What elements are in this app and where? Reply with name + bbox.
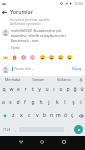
button[interactable]: s xyxy=(7,96,14,109)
staticText: ?123 xyxy=(3,127,11,132)
button[interactable]: b xyxy=(41,109,48,122)
button[interactable]: ö xyxy=(62,109,69,122)
staticText: t xyxy=(32,86,34,93)
staticText: z xyxy=(12,112,15,119)
staticText: v xyxy=(36,112,39,119)
button[interactable]: x xyxy=(17,109,25,122)
button[interactable]: Send xyxy=(71,122,85,136)
staticText: Yorum ekle... xyxy=(14,67,34,71)
staticText: ç xyxy=(71,112,74,119)
staticText: Bu içerikte yorumlar kapalıdır xyxy=(10,18,51,22)
staticText: d xyxy=(16,99,20,106)
staticText: k xyxy=(56,99,59,106)
staticText: Açıklamaları görüntüle xyxy=(10,22,41,26)
button[interactable]: Laughing face xyxy=(39,54,45,60)
staticText: m xyxy=(56,112,61,119)
button[interactable]: Recent apps xyxy=(58,136,70,148)
staticText: Kullanıcı xyxy=(57,77,72,82)
staticText: j xyxy=(48,99,50,106)
staticText: o xyxy=(59,86,63,93)
button[interactable]: , xyxy=(13,122,18,136)
button[interactable]: n xyxy=(48,109,55,122)
button[interactable]: Smiling face xyxy=(66,54,72,60)
staticText: y xyxy=(38,86,41,93)
staticText: Yanıtla xyxy=(11,46,20,50)
button[interactable]: ş xyxy=(69,96,77,109)
button[interactable]: u xyxy=(43,83,50,96)
button[interactable]: z xyxy=(9,109,17,122)
staticText: i xyxy=(80,99,82,106)
staticText: michelle09201 Buradasınd ne çok kazandın… xyxy=(11,29,77,43)
staticText: . xyxy=(67,127,69,132)
button[interactable]: Grinning face xyxy=(48,54,54,60)
button[interactable]: m xyxy=(55,109,62,122)
staticText: ü xyxy=(80,86,84,93)
button[interactable]: h xyxy=(37,96,45,109)
button[interactable]: Blossom xyxy=(20,54,26,60)
staticText: Merhaba xyxy=(5,77,21,82)
staticText: , xyxy=(15,127,17,132)
button[interactable]: Paylaş xyxy=(71,66,83,72)
button[interactable]: Voice input xyxy=(77,76,85,83)
staticText: b xyxy=(43,112,47,119)
button[interactable]: ı xyxy=(50,83,57,96)
staticText: 15:04 xyxy=(74,1,83,6)
staticText: e xyxy=(17,86,20,93)
button[interactable]: w xyxy=(8,83,15,96)
staticText: ş xyxy=(72,99,75,106)
button[interactable]: g xyxy=(29,96,37,109)
staticText: w xyxy=(9,86,14,93)
button[interactable]: q xyxy=(0,83,8,96)
staticText: r xyxy=(24,86,27,93)
button[interactable]: j xyxy=(45,96,53,109)
staticText: u xyxy=(45,86,49,93)
button[interactable]: p xyxy=(64,83,71,96)
staticText: x xyxy=(20,112,23,119)
button[interactable]: i xyxy=(77,96,85,109)
button[interactable]: r xyxy=(22,83,29,96)
button[interactable]: Tamam xyxy=(25,76,51,83)
button[interactable]: ?123 xyxy=(0,122,13,136)
staticText: q xyxy=(2,86,6,93)
button[interactable]: Happy face xyxy=(57,54,63,60)
staticText: c xyxy=(28,112,31,119)
button[interactable]: Backspace xyxy=(76,109,85,122)
button[interactable]: c xyxy=(25,109,33,122)
staticText: l xyxy=(64,99,66,106)
staticText: h xyxy=(39,99,43,106)
button[interactable]: l xyxy=(61,96,69,109)
button[interactable]: e xyxy=(15,83,22,96)
staticText: ğ xyxy=(73,86,77,93)
button[interactable]: Home xyxy=(36,136,48,148)
button[interactable]: f xyxy=(21,96,29,109)
button[interactable]: Shift xyxy=(0,109,9,122)
staticText: s xyxy=(9,99,12,106)
button[interactable]: a xyxy=(0,96,7,109)
staticText: Tamam xyxy=(32,77,45,82)
button[interactable]: ğ xyxy=(71,83,78,96)
button[interactable]: Crown xyxy=(2,54,8,60)
button[interactable]: Merhaba xyxy=(0,76,25,83)
button[interactable]: Fire xyxy=(11,54,17,60)
staticText: f xyxy=(24,99,26,106)
button[interactable]: ü xyxy=(78,83,85,96)
staticText: p xyxy=(66,86,70,93)
button[interactable]: y xyxy=(36,83,43,96)
button[interactable]: ç xyxy=(69,109,76,122)
staticText: g xyxy=(31,99,35,106)
button[interactable]: Kullanıcı xyxy=(51,76,77,83)
button[interactable]: d xyxy=(14,96,21,109)
staticText: Yorumlar xyxy=(10,8,33,15)
staticText: ı xyxy=(53,86,55,93)
button[interactable]: k xyxy=(53,96,61,109)
button[interactable]: Back xyxy=(0,8,9,17)
button[interactable]: Back xyxy=(15,136,27,148)
staticText: Paylaş xyxy=(72,67,82,71)
button[interactable]: v xyxy=(33,109,41,122)
staticText: ö xyxy=(64,112,68,119)
button[interactable]: t xyxy=(29,83,36,96)
button[interactable]: o xyxy=(57,83,64,96)
button[interactable]: Blossom xyxy=(29,54,35,60)
